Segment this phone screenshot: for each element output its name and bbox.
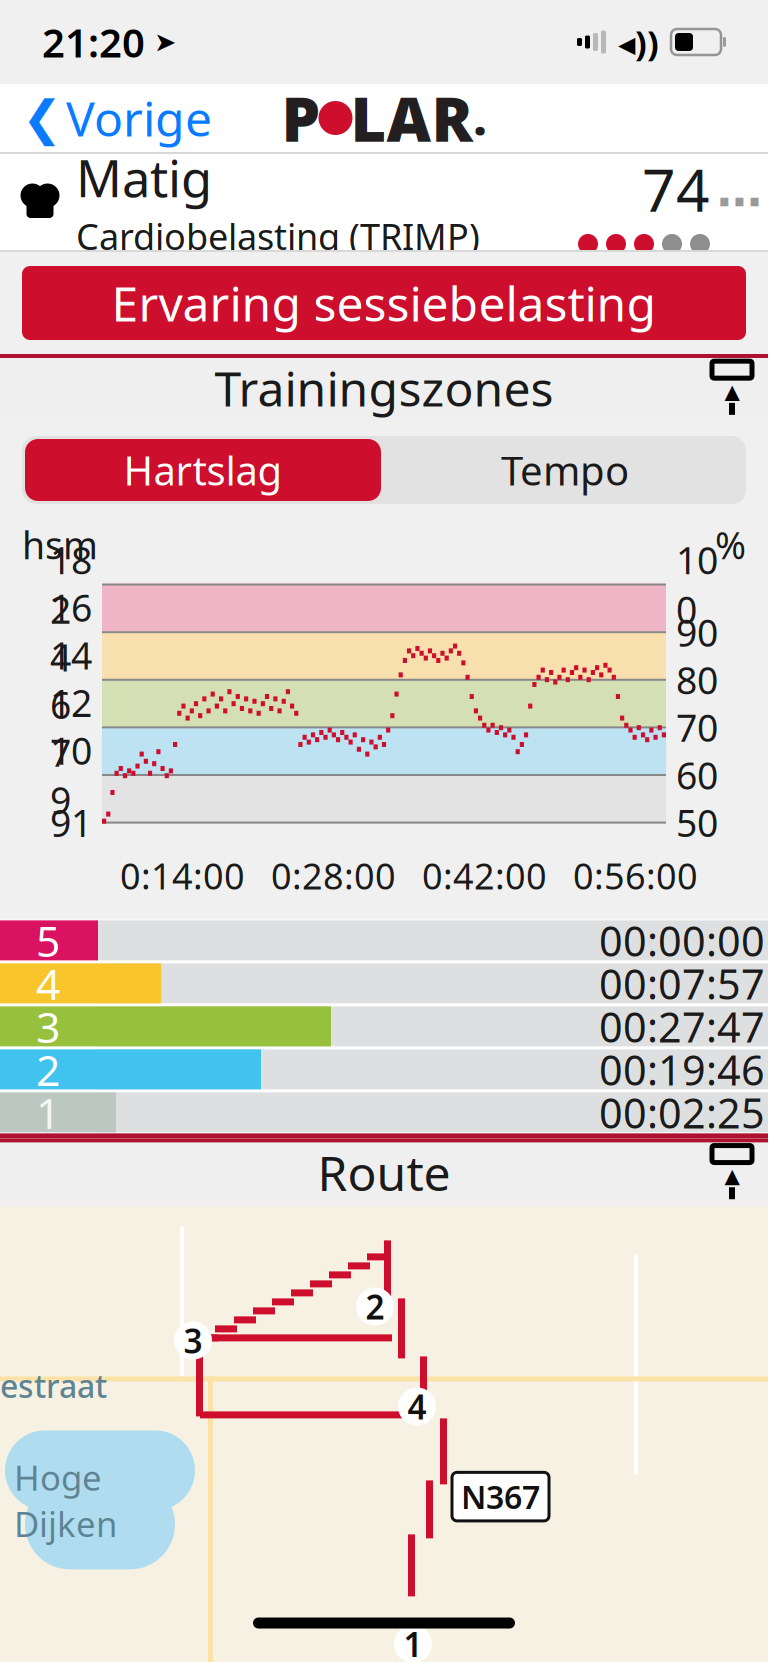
button[interactable]: Tempo xyxy=(384,439,746,501)
staticText: ▲ xyxy=(724,380,739,403)
staticText: 0:42:00 xyxy=(422,852,547,899)
button[interactable]: Delen xyxy=(696,354,768,422)
staticText: N367 xyxy=(461,1475,540,1518)
staticText: 5 xyxy=(36,912,60,969)
staticText: 60 xyxy=(676,750,718,800)
staticText: Cardiobelasting (TRIMP) xyxy=(76,212,480,260)
staticText: 00:19:46 xyxy=(599,1042,765,1097)
staticText: 74 xyxy=(642,150,710,228)
staticText: 146 xyxy=(50,630,92,729)
staticText: 80 xyxy=(676,655,718,705)
staticText: 91 xyxy=(50,798,92,847)
staticText: 3 xyxy=(183,1318,202,1363)
staticText: Trainingszones xyxy=(214,356,553,420)
staticText: 00:27:47 xyxy=(599,999,765,1054)
staticText: Ervaring sessiebelasting xyxy=(111,271,656,335)
staticText: 21:20 xyxy=(42,15,145,68)
staticText: Hoge xyxy=(14,1454,102,1500)
staticText: LAR xyxy=(350,77,473,159)
staticText: 70 xyxy=(676,703,718,752)
staticText: Matig xyxy=(76,144,212,211)
staticText: estraat xyxy=(0,1364,107,1407)
staticText: 4 xyxy=(407,1384,426,1429)
staticText: 50 xyxy=(676,798,718,847)
button[interactable]: Hartslag xyxy=(22,436,384,504)
staticText: % xyxy=(715,520,746,570)
staticText: 100 xyxy=(676,535,718,634)
button[interactable]: Trainingszones xyxy=(0,354,768,422)
staticText: Tempo xyxy=(501,443,629,496)
staticText: 4 xyxy=(36,955,60,1012)
staticText: ◂)) xyxy=(618,19,659,65)
staticText: 0:28:00 xyxy=(271,852,396,899)
staticText: Dijken xyxy=(14,1500,117,1546)
staticText: 3 xyxy=(36,998,60,1055)
button[interactable]: Route xyxy=(0,1138,768,1206)
staticText: . xyxy=(473,88,486,148)
staticText: Route xyxy=(317,1140,450,1204)
staticText: 90 xyxy=(676,607,718,657)
button[interactable]: Meer opties xyxy=(710,167,768,237)
staticText: ➤ xyxy=(145,27,176,57)
staticText: Hartslag xyxy=(123,443,282,496)
staticText: 164 xyxy=(50,583,92,682)
staticText: Vorige xyxy=(66,86,212,150)
staticText: 182 xyxy=(50,535,92,634)
staticText: 2 xyxy=(36,1041,60,1098)
staticText: 1 xyxy=(403,1622,422,1662)
button[interactable]: ❮ xyxy=(0,78,234,158)
staticText: ⋯ xyxy=(716,176,761,228)
staticText: P xyxy=(281,77,320,159)
staticText: ▲ xyxy=(724,1164,739,1187)
staticText: 109 xyxy=(50,725,92,825)
staticText: 0:56:00 xyxy=(573,852,698,899)
button[interactable]: Delen xyxy=(696,1138,768,1206)
staticText: ❮ xyxy=(22,91,62,145)
staticText: 1 xyxy=(36,1084,60,1141)
staticText: 0:14:00 xyxy=(120,852,245,899)
staticText: hsm xyxy=(22,520,98,570)
staticText: 127 xyxy=(50,678,92,777)
staticText: 00:02:25 xyxy=(599,1085,765,1140)
staticText: 00:00:00 xyxy=(599,913,765,968)
staticText: 2 xyxy=(365,1284,384,1329)
button[interactable]: Ervaring sessiebelasting xyxy=(22,266,746,340)
staticText: 00:07:57 xyxy=(599,956,765,1011)
